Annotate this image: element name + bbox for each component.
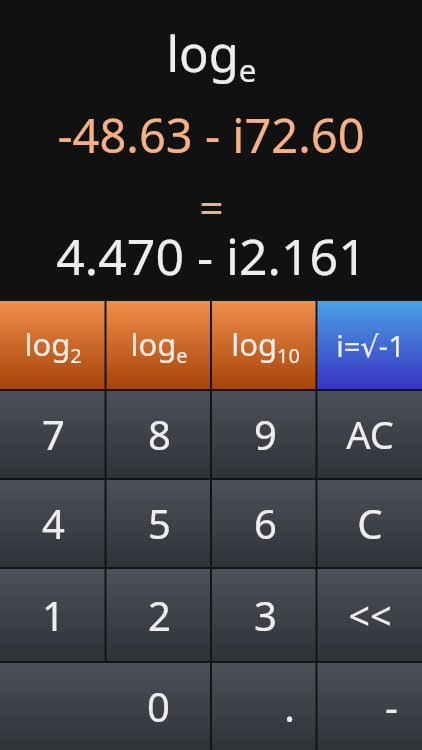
staticText: -48.63 - i72.60 [57,103,365,167]
button[interactable]: 1 [0,568,106,661]
button[interactable]: log10 [212,300,318,390]
staticText: = [199,178,224,235]
staticText: loge [166,20,257,92]
staticText: << [348,589,392,641]
staticText: 4 [42,496,65,550]
button[interactable]: 9 [212,390,318,478]
staticText: i=√-1 [336,326,405,365]
button[interactable]: Backspace [318,568,422,661]
staticText: 8 [148,407,171,461]
staticText: 3 [254,588,277,642]
staticText: C [357,496,383,550]
staticText: log2 [24,323,82,368]
button[interactable]: - [317,662,422,750]
button[interactable]: 4 [0,479,106,567]
staticText: 0 [147,679,170,733]
button[interactable]: . [211,662,317,750]
button[interactable]: 3 [212,568,318,661]
staticText: 5 [148,496,171,550]
button[interactable]: 7 [0,390,106,478]
staticText: 9 [254,407,277,461]
staticText: 4.470 - i2.161 [56,222,367,290]
staticText: 2 [148,588,171,642]
button[interactable]: 8 [106,390,212,478]
button[interactable]: 2 [106,568,212,661]
staticText: 1 [42,588,65,642]
staticText: AC [346,408,394,460]
staticText: - [385,679,398,733]
button[interactable]: 5 [106,479,212,567]
button[interactable]: 0 [0,662,211,750]
button[interactable]: Imaginary unit [318,300,422,390]
staticText: 6 [254,496,277,550]
button[interactable]: AC [318,390,422,478]
button[interactable]: C [318,479,422,567]
button[interactable]: 6 [212,479,318,567]
button[interactable]: loge [106,300,212,390]
staticText: log10 [231,323,300,368]
staticText: . [284,679,295,733]
button[interactable]: log2 [0,300,106,390]
staticText: loge [130,323,188,368]
staticText: 7 [42,407,65,461]
